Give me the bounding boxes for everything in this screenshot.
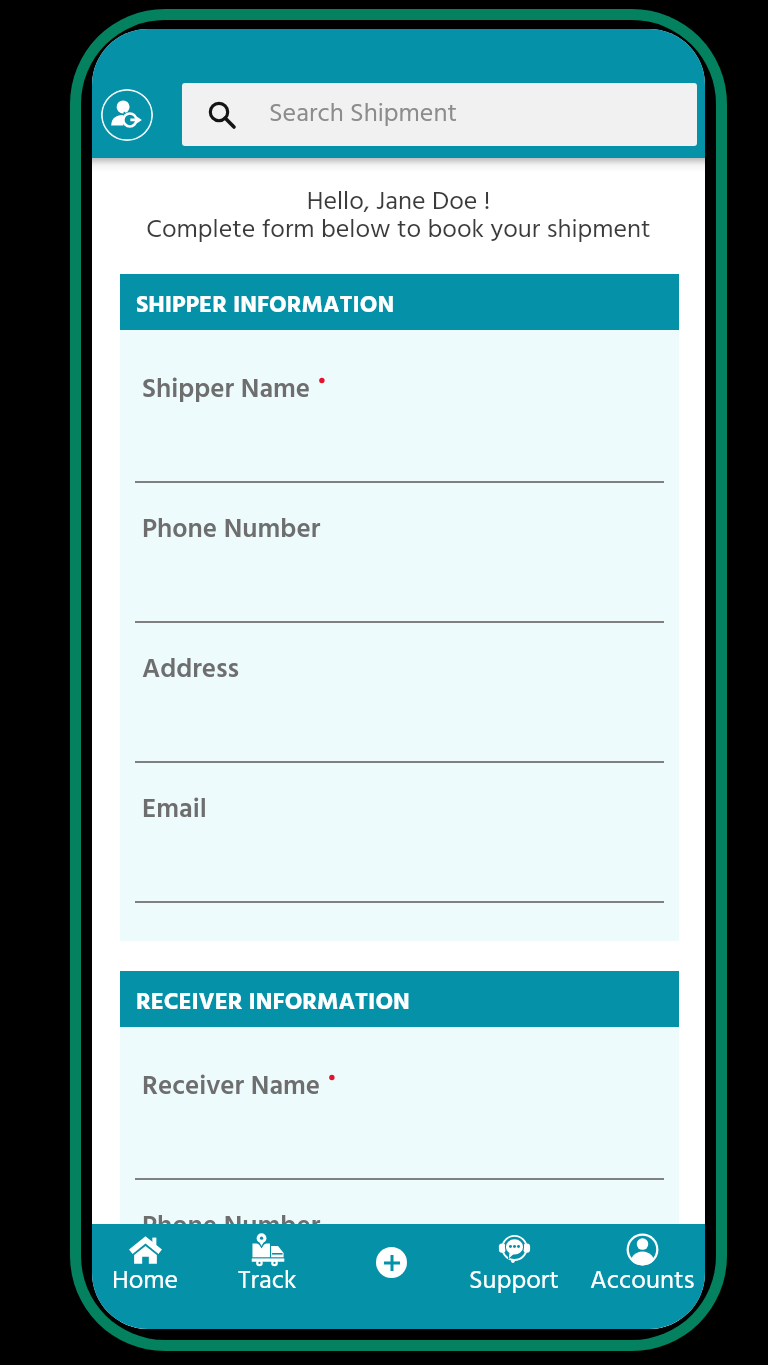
staticText: Search Shipment: [269, 94, 458, 136]
staticText: Phone Number: [142, 509, 321, 552]
staticText: Support: [469, 1261, 559, 1303]
button[interactable]: Track: [217, 1224, 317, 1329]
staticText: Hello, Jane Doe ! Complete form below to…: [92, 182, 705, 251]
staticText: Receiver Name: [142, 1066, 321, 1109]
button[interactable]: Account and logout: [101, 89, 153, 141]
staticText: Accounts: [590, 1261, 695, 1303]
button[interactable]: Search Shipment: [182, 83, 697, 146]
button[interactable]: Home: [95, 1224, 195, 1329]
button[interactable]: Accounts: [580, 1224, 705, 1329]
staticText: Phone Number: [142, 1206, 321, 1249]
staticText: Address: [142, 649, 240, 692]
staticText: SHIPPER INFORMATION: [136, 287, 395, 325]
button[interactable]: Add shipment: [376, 1247, 407, 1278]
staticText: Email: [142, 789, 207, 832]
staticText: Track: [238, 1261, 297, 1303]
staticText: Shipper Name: [142, 369, 311, 412]
button[interactable]: Support: [454, 1224, 574, 1329]
staticText: RECEIVER INFORMATION: [136, 984, 410, 1022]
staticText: Home: [112, 1261, 179, 1303]
